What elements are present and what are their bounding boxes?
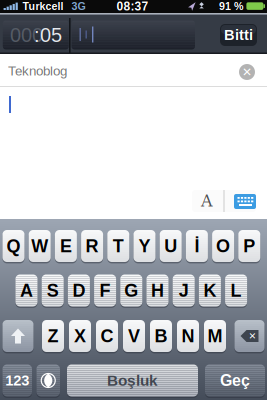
staticText: R [86, 236, 99, 256]
button[interactable]: Boşluk [67, 363, 198, 398]
staticText: J [179, 280, 189, 300]
staticText: G [124, 280, 138, 300]
staticText: P [243, 236, 255, 256]
button[interactable]: N [177, 318, 199, 353]
staticText: E [60, 236, 72, 256]
button[interactable]: X [69, 318, 91, 353]
staticText: İ [194, 236, 199, 256]
button[interactable]: K [199, 273, 221, 308]
staticText: B [154, 326, 167, 346]
button[interactable]: H [146, 273, 168, 308]
button[interactable]: İ [186, 228, 208, 263]
staticText: 91 % [219, 0, 243, 12]
staticText: Boşluk [107, 372, 158, 389]
staticText: 000 [10, 24, 43, 46]
button[interactable]: F [94, 273, 116, 308]
button[interactable]: Z [42, 318, 64, 353]
staticText: O [216, 236, 230, 256]
staticText: T [113, 236, 124, 256]
staticText: Geç [220, 372, 250, 389]
staticText: L [231, 280, 242, 300]
button[interactable]: Geç [205, 363, 265, 398]
staticText: X [74, 326, 86, 346]
button[interactable]: T [107, 228, 129, 263]
button[interactable]: E [55, 228, 77, 263]
button[interactable]: J [173, 273, 195, 308]
staticText: Turkcell [22, 0, 63, 12]
staticText: S [47, 280, 59, 300]
staticText: V [128, 326, 140, 346]
button[interactable]: W [29, 228, 51, 263]
staticText: Q [6, 236, 20, 256]
button[interactable]: O [212, 228, 234, 263]
button[interactable]: S [42, 273, 64, 308]
button[interactable]: G [120, 273, 142, 308]
button[interactable]: Bitti [220, 24, 257, 46]
staticText: M [207, 326, 222, 346]
button[interactable]: U [160, 228, 182, 263]
staticText: Z [47, 326, 58, 346]
staticText: 08:37 [116, 0, 148, 13]
button[interactable]: L [225, 273, 247, 308]
button[interactable]: R [81, 228, 103, 263]
staticText: C [100, 326, 113, 346]
button[interactable] [36, 363, 60, 398]
button[interactable]: Clear [235, 60, 259, 84]
staticText: A [20, 280, 33, 300]
staticText: ✕ [248, 331, 256, 341]
button[interactable]: B [150, 318, 172, 353]
staticText: W [31, 236, 48, 256]
staticText: N [181, 326, 194, 346]
button[interactable]: D [68, 273, 90, 308]
staticText: U [164, 236, 177, 256]
staticText: A [201, 192, 213, 210]
button[interactable]: ✕ [234, 318, 264, 353]
button[interactable]: P [238, 228, 260, 263]
staticText: D [72, 280, 85, 300]
button[interactable]: 123 [2, 363, 32, 398]
button[interactable]: M [204, 318, 226, 353]
staticText: :05 [34, 24, 62, 46]
button[interactable] [2, 318, 33, 353]
button[interactable]: Q [2, 228, 24, 263]
staticText: 3G [71, 0, 85, 12]
staticText: 123 [5, 372, 29, 389]
button[interactable]: A [15, 273, 37, 308]
staticText: H [151, 280, 164, 300]
button[interactable]: Y [133, 228, 155, 263]
staticText: Bitti [224, 27, 253, 43]
staticText: Y [138, 236, 150, 256]
staticText: Teknoblog [8, 64, 67, 78]
button[interactable]: V [123, 318, 145, 353]
staticText: F [100, 280, 111, 300]
staticText: ✕ [242, 65, 252, 79]
button[interactable]: C [96, 318, 118, 353]
staticText: K [203, 280, 216, 300]
